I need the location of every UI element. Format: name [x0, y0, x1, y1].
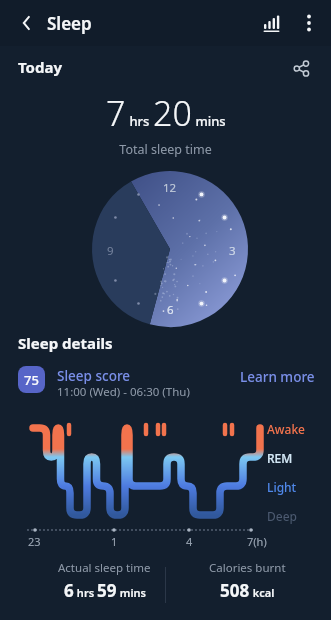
staticText: Calories burnt: [209, 560, 286, 576]
button[interactable]: [18, 365, 331, 395]
staticText: mins: [192, 112, 226, 130]
staticText: Actual sleep time: [58, 560, 151, 576]
button[interactable]: [252, 4, 290, 42]
staticText: hrs: [126, 112, 153, 130]
staticText: 7: [106, 90, 126, 136]
staticText: Learn more: [240, 368, 315, 386]
staticText: Sleep: [47, 12, 92, 35]
staticText: 6: [167, 302, 174, 318]
staticText: Sleep details: [18, 333, 113, 353]
staticText: 12: [163, 180, 177, 196]
staticText: 9: [107, 243, 114, 259]
button[interactable]: [8, 4, 46, 42]
staticText: Sleep score: [57, 367, 131, 385]
staticText: Today: [18, 57, 63, 77]
staticText: mins: [117, 585, 146, 600]
staticText: REM: [267, 450, 293, 466]
button[interactable]: Calories burnt: [166, 560, 329, 602]
button[interactable]: [283, 50, 319, 86]
staticText: 508: [220, 579, 250, 602]
staticText: Light: [267, 479, 297, 495]
staticText: Total sleep time: [0, 141, 331, 158]
button[interactable]: [290, 4, 328, 42]
staticText: hrs: [74, 585, 97, 600]
staticText: 75: [24, 371, 39, 389]
staticText: 20: [153, 90, 192, 136]
button[interactable]: 75: [18, 366, 45, 393]
staticText: 59: [97, 579, 117, 602]
staticText: 7(h): [247, 534, 267, 549]
staticText: 1: [111, 534, 118, 549]
staticText: 23: [28, 534, 41, 549]
staticText: Awake: [267, 421, 306, 437]
button[interactable]: Actual sleep time: [22, 560, 187, 602]
staticText: 4: [186, 534, 193, 549]
button[interactable]: Learn more: [240, 367, 315, 387]
staticText: 6: [64, 579, 74, 602]
staticText: Deep: [267, 508, 297, 524]
staticText: 3: [229, 243, 236, 259]
staticText: kcal: [250, 585, 275, 600]
staticText: 11:00 (Wed) - 06:30 (Thu): [57, 384, 190, 400]
